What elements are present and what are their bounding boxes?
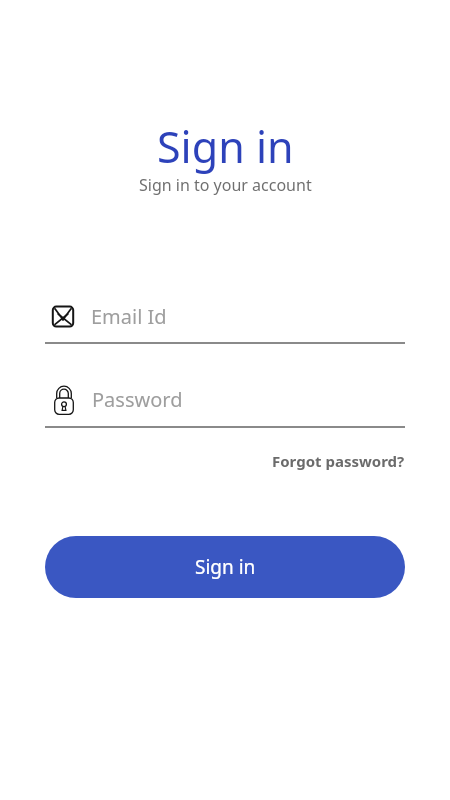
button[interactable]: Password (45, 381, 405, 428)
staticText: Sign in to your account (139, 174, 312, 196)
staticText: Email Id (91, 303, 167, 330)
button[interactable]: Forgot password? (272, 451, 405, 471)
button[interactable]: Sign in (45, 536, 405, 598)
staticText: Password (92, 386, 183, 413)
staticText: Sign in (195, 554, 256, 580)
staticText: Sign in (157, 117, 294, 176)
button[interactable]: Email Id (45, 298, 405, 344)
staticText: Forgot password? (272, 451, 405, 471)
